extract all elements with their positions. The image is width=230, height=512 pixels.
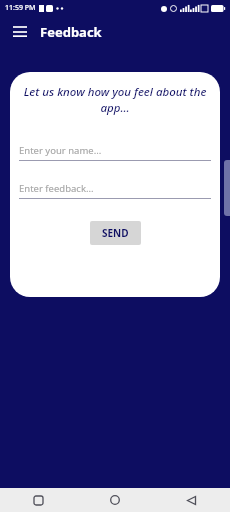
staticText: Enter feedback... <box>19 182 94 195</box>
button[interactable]: Enter feedback... <box>19 182 211 199</box>
staticText: SEND <box>102 226 129 240</box>
button[interactable]: Home <box>76 488 153 512</box>
button[interactable]: Back <box>153 488 230 512</box>
staticText: Let us know how you feel about the app..… <box>16 84 214 115</box>
button[interactable]: Recent apps <box>0 488 76 512</box>
button[interactable]: SEND <box>90 221 141 245</box>
staticText: Enter your name... <box>19 144 102 157</box>
staticText: Feedback <box>40 23 102 41</box>
staticText: 11:59 PM <box>5 3 36 13</box>
button[interactable]: Enter your name... <box>19 144 211 161</box>
button[interactable]: Open navigation menu <box>6 18 34 46</box>
